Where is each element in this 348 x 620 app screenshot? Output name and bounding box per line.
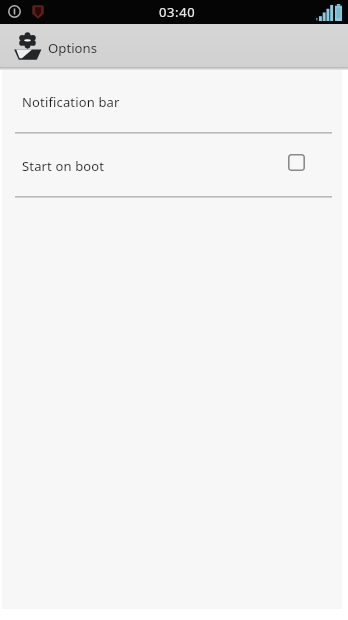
other: Battery <box>335 4 342 21</box>
other: Signal strength <box>316 5 332 21</box>
button[interactable]: App icon <box>0 24 348 67</box>
staticText: Options <box>48 39 98 57</box>
staticText: Notification bar <box>22 93 120 111</box>
staticText: 03:40 <box>159 3 196 21</box>
button[interactable]: Start on boot <box>0 134 348 196</box>
other: App icon <box>13 34 42 60</box>
staticText: Start on boot <box>22 157 105 175</box>
button[interactable]: Start on boot checkbox <box>279 145 313 179</box>
button[interactable]: Notification bar <box>0 70 348 132</box>
